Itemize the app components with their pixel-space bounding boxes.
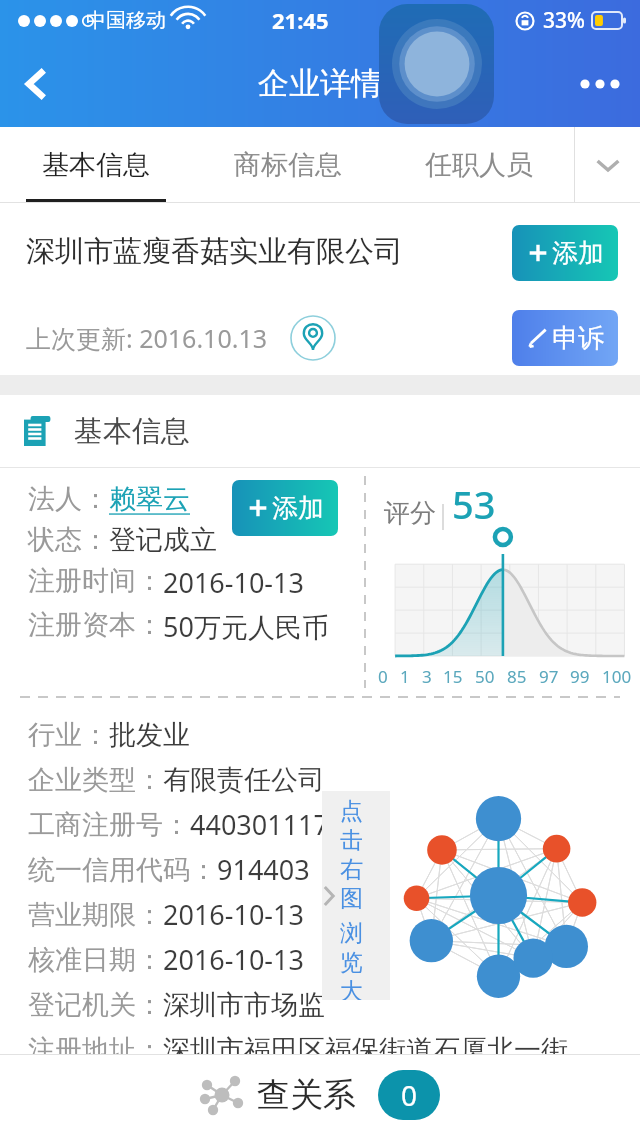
staticText: 注册时间：: [28, 564, 163, 598]
staticText: 大: [340, 977, 363, 1000]
staticText: 查关系: [257, 1074, 356, 1116]
staticText: 21:45: [272, 5, 329, 35]
staticText: 上次更新: 2016.10.13: [26, 321, 268, 355]
staticText: 3: [422, 665, 432, 688]
staticText: 97: [539, 665, 559, 688]
staticText: 50: [475, 665, 495, 688]
staticText: 评分: [384, 497, 436, 530]
staticText: 企业详情: [258, 64, 382, 103]
staticText: 行业：: [28, 718, 109, 752]
staticText: 浏: [340, 919, 363, 948]
staticText: 33%: [543, 6, 585, 35]
button[interactable]: 基本信息: [0, 127, 192, 203]
staticText: 有限责任公司: [163, 763, 325, 797]
staticText: 览: [340, 948, 363, 977]
button[interactable]: 赖翠云: [109, 482, 190, 516]
button[interactable]: 任职人员: [383, 127, 574, 203]
staticText: 核准日期：: [28, 943, 163, 977]
staticText: 添加: [272, 492, 324, 525]
staticText: 状态：: [28, 523, 109, 557]
staticText: 2016-10-13: [163, 941, 304, 978]
staticText: 99: [570, 665, 590, 688]
button[interactable]: 申诉: [512, 310, 618, 366]
staticText: 2016-10-13: [163, 564, 304, 601]
staticText: 53: [452, 478, 496, 530]
staticText: 0: [378, 665, 388, 688]
button[interactable]: Expand tabs: [575, 127, 640, 203]
staticText: 深圳市市场监: [163, 988, 325, 1022]
staticText: 50万元人民币: [163, 608, 329, 645]
staticText: 0: [401, 1076, 418, 1114]
staticText: 登记成立: [109, 523, 217, 557]
staticText: 15: [443, 665, 463, 688]
staticText: 85: [507, 665, 527, 688]
button[interactable]: Location: [290, 315, 336, 361]
button[interactable]: 查关系: [201, 1070, 440, 1120]
staticText: 登记机关：: [28, 988, 163, 1022]
staticText: 100: [602, 665, 632, 688]
button[interactable]: 添加: [232, 480, 338, 536]
staticText: 击: [340, 826, 363, 855]
staticText: 法人：: [28, 482, 109, 516]
staticText: 商标信息: [234, 148, 342, 182]
staticText: 批发业: [109, 718, 190, 752]
staticText: 营业期限：: [28, 898, 163, 932]
staticText: 深圳市蓝瘦香菇实业有限公司: [26, 233, 403, 270]
staticText: 注册资本：: [28, 608, 163, 642]
button[interactable]: View relationship graph: [322, 791, 607, 1000]
staticText: 注册地址：: [28, 1033, 163, 1067]
staticText: 统一信用代码：: [28, 853, 217, 887]
staticText: 1: [400, 665, 410, 688]
staticText: 图: [340, 884, 363, 913]
staticText: 点: [340, 797, 363, 826]
staticText: 440301117790551: [190, 806, 422, 843]
button[interactable]: 添加: [512, 225, 618, 281]
staticText: 深圳市福田区福保街道石厦北一街: [163, 1033, 568, 1067]
staticText: 工商注册号：: [28, 808, 190, 842]
staticText: 21号安钰大厦1701: [28, 1072, 256, 1109]
button[interactable]: 商标信息: [192, 127, 383, 203]
staticText: 基本信息: [74, 413, 190, 450]
staticText: 中国移动: [86, 8, 166, 33]
staticText: 基本信息: [42, 148, 150, 182]
button[interactable]: Assistive touch: [379, 4, 494, 124]
button[interactable]: Back: [0, 40, 72, 127]
staticText: 右: [340, 855, 363, 884]
staticText: 添加: [552, 237, 604, 270]
staticText: 2016-10-13: [163, 896, 304, 933]
staticText: 任职人员: [425, 148, 533, 182]
staticText: 914403: [217, 851, 310, 888]
button[interactable]: More: [560, 40, 640, 127]
staticText: 申诉: [552, 322, 604, 355]
staticText: 企业类型：: [28, 763, 163, 797]
